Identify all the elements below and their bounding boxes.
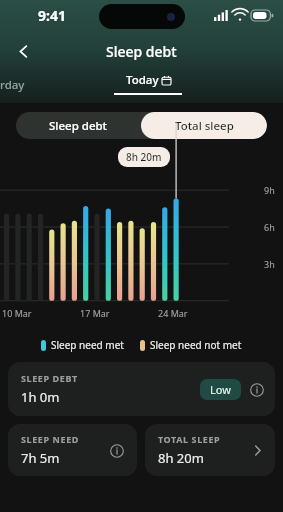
other: More info — [249, 382, 264, 397]
staticText: TOTAL SLEEP — [158, 433, 221, 445]
staticText: SLEEP NEED — [21, 433, 79, 445]
button[interactable]: Today — [114, 72, 182, 95]
staticText: rday — [0, 77, 25, 93]
staticText: 9h — [264, 184, 275, 196]
staticText: 7h 5m — [21, 449, 60, 467]
staticText: 1h 0m — [21, 388, 60, 406]
button[interactable]: Total sleep — [141, 112, 267, 139]
button[interactable]: 8h 20m — [126, 150, 162, 164]
other: More info — [109, 443, 124, 458]
staticText: 9:41 — [38, 6, 66, 25]
button[interactable]: Low — [210, 382, 231, 397]
button[interactable]: TOTAL SLEEP — [145, 424, 275, 476]
staticText: 8h 20m — [158, 449, 204, 467]
staticText: 6h — [264, 221, 275, 233]
staticText: Sleep need met — [51, 338, 124, 352]
staticText: Today — [126, 72, 159, 88]
staticText: 10 Mar — [2, 307, 32, 319]
button[interactable]: SLEEP NEED — [8, 424, 137, 476]
staticText: SLEEP DEBT — [21, 372, 78, 384]
staticText: 8h 20m — [126, 150, 162, 164]
staticText: Low — [210, 382, 231, 397]
staticText: 24 Mar — [158, 307, 188, 319]
button[interactable]: Sleep debt — [16, 112, 141, 139]
staticText: Sleep debt — [49, 118, 108, 134]
button[interactable]: Back — [8, 36, 38, 66]
staticText: Sleep need not met — [150, 338, 242, 352]
button[interactable]: SLEEP DEBT — [8, 362, 275, 416]
staticText: 17 Mar — [80, 307, 110, 319]
staticText: Sleep debt — [106, 42, 177, 61]
other: Open total sleep — [250, 443, 264, 457]
staticText: 3h — [264, 258, 275, 270]
staticText: Total sleep — [175, 118, 234, 134]
